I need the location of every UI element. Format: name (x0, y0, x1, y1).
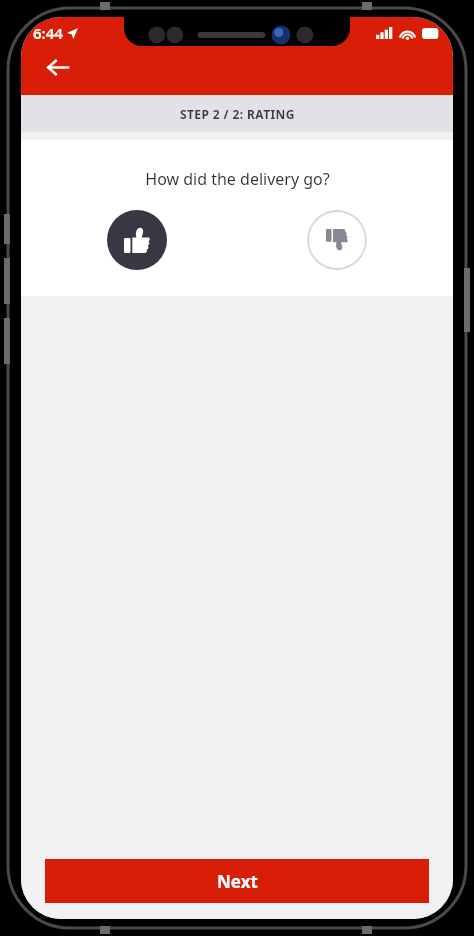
staticText: 6:44 (33, 23, 63, 43)
button[interactable]: Back (35, 45, 79, 89)
staticText: How did the delivery go? (145, 168, 330, 190)
staticText: Next (217, 870, 258, 893)
button[interactable]: Thumbs up (107, 210, 167, 270)
button[interactable]: Thumbs down (307, 210, 367, 270)
staticText: STEP 2 / 2: RATING (180, 106, 295, 122)
button[interactable]: Next (45, 859, 429, 903)
